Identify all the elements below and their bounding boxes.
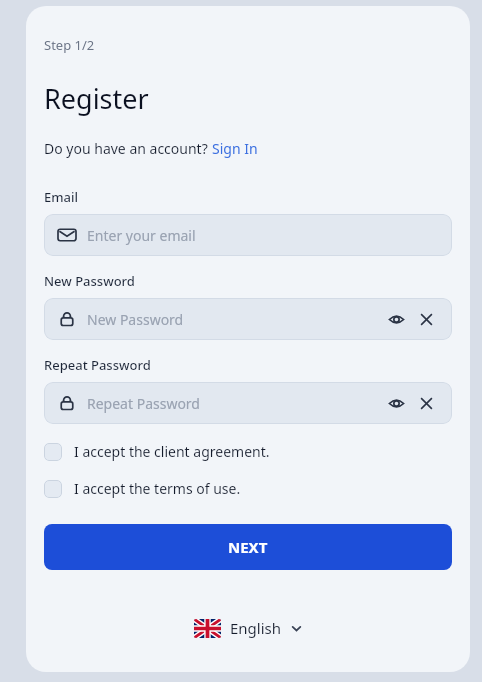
button[interactable]: Show password	[384, 391, 408, 415]
button[interactable]: Sign In	[212, 139, 258, 158]
staticText: New Password	[44, 272, 135, 290]
staticText: Sign In	[212, 139, 258, 158]
staticText: English	[230, 618, 282, 638]
button[interactable]: New Password	[44, 298, 452, 340]
staticText: Step 1/2	[44, 36, 95, 54]
staticText: Repeat Password	[44, 356, 151, 374]
button[interactable]: Clear	[414, 307, 438, 331]
staticText: Do you have an account?	[44, 139, 212, 158]
button[interactable]: Show password	[384, 307, 408, 331]
staticText: I accept the client agreement.	[74, 442, 270, 461]
staticText: NEXT	[228, 537, 268, 557]
button[interactable]: NEXT	[44, 524, 452, 570]
button[interactable]: Enter your email	[44, 214, 452, 256]
button[interactable]: English	[188, 614, 308, 642]
staticText: Email	[44, 188, 79, 206]
staticText: I accept the terms of use.	[74, 479, 241, 498]
button[interactable]: I accept the terms of use.	[44, 477, 452, 500]
staticText: New Password	[87, 310, 384, 329]
staticText: Enter your email	[87, 226, 438, 245]
button[interactable]: Repeat Password	[44, 382, 452, 424]
staticText: Register	[44, 80, 149, 117]
staticText: Repeat Password	[87, 394, 384, 413]
button[interactable]: Clear	[414, 391, 438, 415]
button[interactable]: I accept the client agreement.	[44, 440, 452, 463]
